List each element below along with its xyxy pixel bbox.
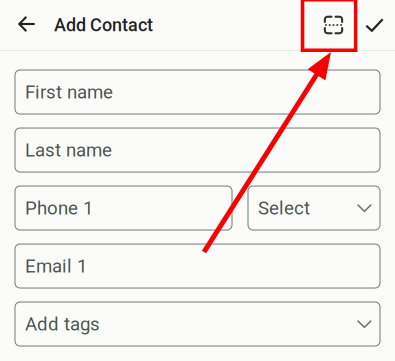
staticText: First name [25,81,113,103]
staticText: Email 1 [25,255,87,277]
staticText: Add Contact [54,14,153,36]
staticText: Last name [25,139,112,161]
button[interactable]: Phone 1 [15,186,232,230]
staticText: Phone 1 [25,197,93,219]
button[interactable]: Back [0,0,52,50]
button[interactable]: Last name [15,128,380,172]
staticText: Select [258,197,310,219]
button[interactable]: Add tags [15,302,380,346]
button[interactable]: Email 1 [15,244,380,288]
staticText: Add tags [25,313,100,335]
button[interactable]: First name [15,70,380,114]
button[interactable]: Scan business card [313,0,354,50]
button[interactable]: Select [248,186,380,230]
button[interactable]: Save contact [354,0,395,50]
